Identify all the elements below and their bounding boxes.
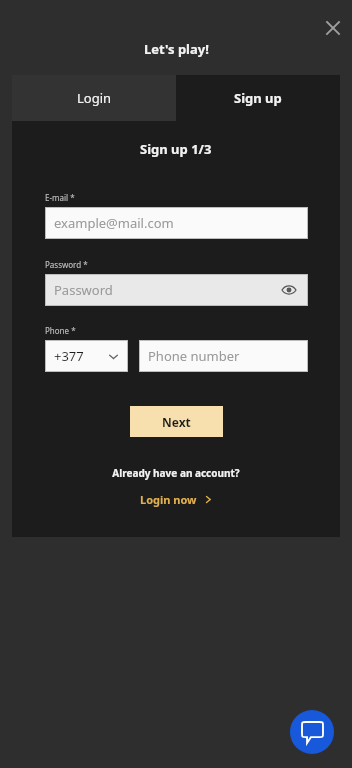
button[interactable]: +377 bbox=[45, 340, 128, 372]
staticText: Phone * bbox=[45, 325, 76, 336]
staticText: Let's play! bbox=[144, 40, 209, 58]
button[interactable]: Phone number bbox=[139, 340, 308, 372]
staticText: example@mail.com bbox=[54, 214, 174, 232]
staticText: +377 bbox=[54, 347, 84, 365]
staticText: Password * bbox=[45, 259, 88, 270]
staticText: E-mail * bbox=[45, 192, 75, 203]
button[interactable]: Close bbox=[320, 15, 346, 41]
button[interactable]: Show password bbox=[279, 280, 299, 300]
button[interactable]: Next bbox=[130, 406, 223, 437]
button[interactable]: Login now bbox=[134, 489, 219, 510]
button[interactable]: Password bbox=[45, 274, 308, 306]
staticText: Sign up 1/3 bbox=[140, 140, 212, 158]
staticText: Sign up bbox=[234, 89, 282, 107]
button[interactable]: Open chat bbox=[290, 710, 334, 754]
staticText: Login bbox=[77, 89, 112, 107]
button[interactable]: Sign up bbox=[176, 75, 340, 121]
button[interactable]: Login bbox=[12, 75, 176, 121]
staticText: Password bbox=[54, 281, 113, 299]
staticText: Already have an account? bbox=[112, 466, 240, 480]
staticText: Login now bbox=[140, 492, 197, 507]
button[interactable]: example@mail.com bbox=[45, 207, 308, 239]
staticText: Phone number bbox=[148, 347, 240, 365]
staticText: Next bbox=[162, 414, 191, 430]
